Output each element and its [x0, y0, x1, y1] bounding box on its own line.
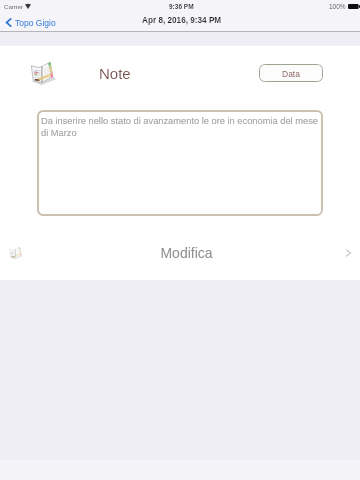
other: Note [9, 246, 24, 260]
other: Back [5, 18, 12, 27]
staticText: Topo Gigio [15, 18, 56, 27]
button[interactable]: Da inserire nello stato di avanzamento l… [37, 110, 323, 216]
other: Note [30, 60, 58, 86]
other: Wi-Fi [25, 4, 31, 9]
staticText: 100% [329, 3, 346, 10]
button[interactable]: Note [0, 230, 360, 275]
staticText: 9:36 PM [169, 3, 194, 10]
staticText: Data [282, 69, 300, 78]
button[interactable]: Data [259, 64, 323, 82]
staticText: Note [99, 65, 131, 82]
staticText: Carrier [4, 3, 23, 10]
staticText: Modifica [27, 245, 346, 261]
button[interactable]: Back [5, 15, 56, 29]
staticText: Da inserire nello stato di avanzamento l… [41, 116, 318, 138]
staticText: Apr 8, 2016, 9:34 PM [142, 16, 222, 25]
